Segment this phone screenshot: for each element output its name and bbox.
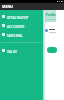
staticText: Profile xyxy=(46,13,56,17)
staticText: me@mail xyxy=(46,18,56,21)
staticText: ATTACHMENT xyxy=(7,15,29,19)
button[interactable] xyxy=(45,27,56,34)
staticText: MENU xyxy=(2,4,14,9)
staticText: MATERIAL xyxy=(7,33,23,37)
button[interactable]: Compose xyxy=(47,47,57,53)
staticText: VALUE xyxy=(7,49,18,53)
staticText: ACCOUNTS xyxy=(7,24,25,28)
button[interactable]: MATERIAL xyxy=(0,30,43,39)
button[interactable]: ACCOUNTS xyxy=(0,21,43,30)
button[interactable]: ATTACHMENT xyxy=(0,12,43,21)
button[interactable]: VALUE xyxy=(0,46,43,55)
